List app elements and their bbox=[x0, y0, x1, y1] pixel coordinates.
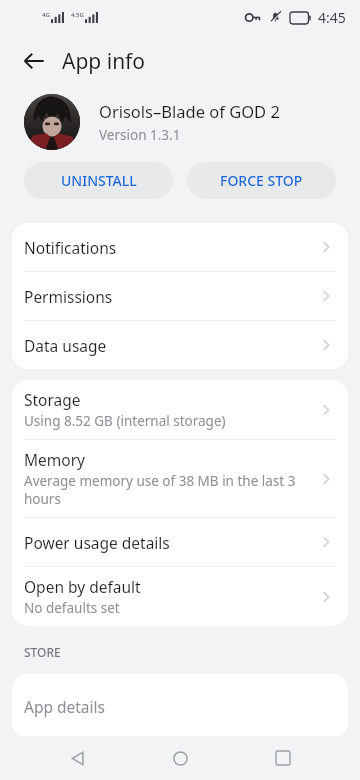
staticText: Permissions bbox=[24, 286, 316, 307]
staticText: Version 1.3.1 bbox=[99, 126, 181, 144]
staticText: Data usage bbox=[24, 335, 316, 356]
button[interactable]: FORCE STOP bbox=[187, 162, 336, 199]
button[interactable]: Data usage bbox=[12, 321, 348, 369]
staticText: 4.5G bbox=[71, 11, 84, 19]
staticText: STORE bbox=[24, 644, 61, 660]
staticText: 4:45 bbox=[318, 8, 346, 27]
staticText: FORCE STOP bbox=[220, 171, 303, 190]
button[interactable]: Recent apps bbox=[257, 736, 309, 780]
staticText: UNINSTALL bbox=[61, 171, 137, 190]
staticText: Using 8.52 GB (internal storage) bbox=[24, 412, 226, 430]
button[interactable]: Storage bbox=[12, 380, 348, 439]
button[interactable]: Memory bbox=[12, 440, 348, 517]
staticText: Open by default bbox=[24, 576, 141, 597]
staticText: App info bbox=[62, 47, 146, 76]
button[interactable]: Permissions bbox=[12, 272, 348, 320]
button[interactable]: App details bbox=[12, 674, 348, 738]
staticText: Average memory use of 38 MB in the last … bbox=[24, 472, 296, 508]
staticText: Memory bbox=[24, 449, 85, 470]
button[interactable]: Home bbox=[154, 736, 206, 780]
staticText: Storage bbox=[24, 389, 81, 410]
staticText: Notifications bbox=[24, 237, 316, 258]
button[interactable]: Back bbox=[51, 736, 103, 780]
button[interactable]: Back bbox=[12, 39, 56, 83]
button[interactable]: Open by default bbox=[12, 567, 348, 626]
button[interactable]: UNINSTALL bbox=[24, 162, 173, 199]
staticText: 4G bbox=[42, 11, 50, 19]
button[interactable]: Power usage details bbox=[12, 518, 348, 566]
staticText: Orisols–Blade of GOD 2 bbox=[99, 100, 280, 122]
button[interactable]: Notifications bbox=[12, 223, 348, 271]
staticText: No defaults set bbox=[24, 599, 120, 617]
staticText: App details bbox=[24, 696, 105, 717]
staticText: Power usage details bbox=[24, 532, 316, 553]
